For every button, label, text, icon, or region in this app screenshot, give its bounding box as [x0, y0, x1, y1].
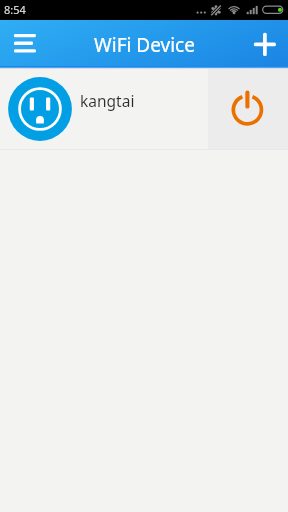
button[interactable]: Add device — [242, 19, 288, 65]
staticText: WiFi Device — [94, 32, 195, 58]
button[interactable]: Power toggle — [208, 66, 288, 150]
button[interactable]: kangtai — [0, 66, 208, 150]
staticText: 8:54 — [4, 2, 26, 17]
staticText: kangtai — [80, 90, 135, 111]
button[interactable]: Menu — [0, 19, 48, 65]
